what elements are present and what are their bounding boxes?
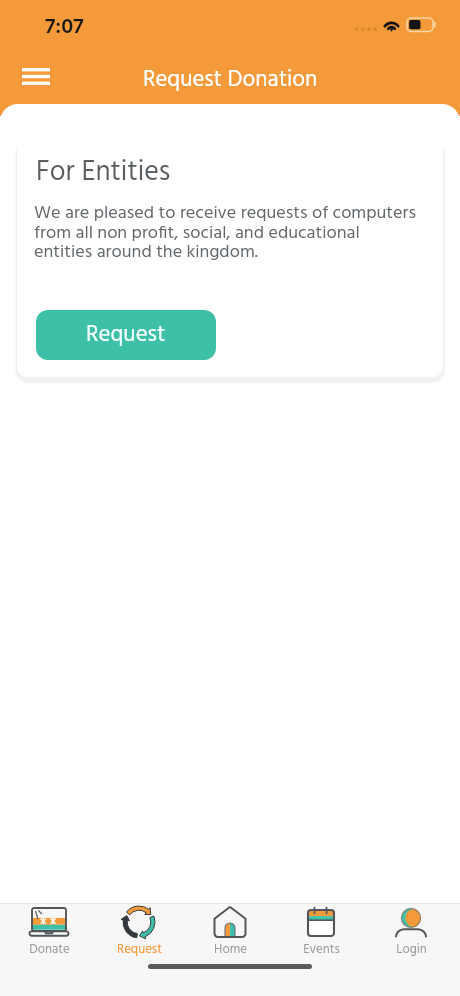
staticText: Request Donation xyxy=(143,62,318,98)
button[interactable]: Login xyxy=(369,904,453,960)
staticText: Request xyxy=(86,317,166,354)
staticText: Events xyxy=(303,939,340,960)
staticText: Home xyxy=(214,939,247,960)
button[interactable]: Open navigation menu xyxy=(13,53,59,99)
staticText: Request xyxy=(117,939,162,960)
staticText: Donate xyxy=(29,939,70,960)
button[interactable]: Events xyxy=(279,904,363,960)
staticText: For Entities xyxy=(36,150,171,195)
button[interactable]: Request xyxy=(97,904,181,960)
button[interactable]: Home xyxy=(188,904,272,960)
button[interactable]: Request xyxy=(36,310,216,360)
button[interactable]: Donate xyxy=(7,904,91,960)
staticText: 7:07 xyxy=(45,10,84,45)
staticText: We are pleased to receive requests of co… xyxy=(34,199,418,266)
staticText: Login xyxy=(396,939,427,960)
